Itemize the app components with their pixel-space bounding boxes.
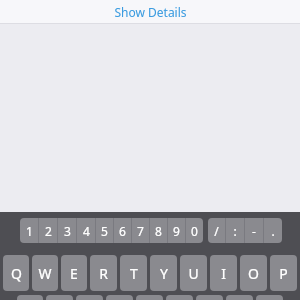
button[interactable] — [256, 295, 283, 300]
staticText: 8 — [155, 223, 162, 239]
button[interactable]: Y — [150, 255, 177, 291]
button[interactable]: 3 — [58, 218, 76, 243]
button[interactable]: 4 — [77, 218, 95, 243]
staticText: 7 — [137, 223, 144, 239]
staticText: Q — [11, 264, 22, 283]
staticText: 1 — [26, 223, 33, 239]
button[interactable] — [106, 295, 133, 300]
staticText: E — [70, 264, 78, 283]
button[interactable]: 2 — [39, 218, 57, 243]
staticText: P — [279, 264, 288, 283]
button[interactable]: Show Details — [104, 2, 197, 22]
button[interactable] — [17, 295, 43, 300]
staticText: 2 — [45, 223, 52, 239]
staticText: O — [248, 264, 259, 283]
staticText: - — [252, 223, 256, 239]
button[interactable]: E — [61, 255, 87, 291]
staticText: Y — [160, 264, 168, 283]
button[interactable]: R — [90, 255, 117, 291]
staticText: 4 — [83, 223, 90, 239]
button[interactable]: T — [120, 255, 147, 291]
staticText: T — [130, 264, 138, 283]
button[interactable]: 8 — [150, 218, 167, 243]
staticText: 9 — [173, 223, 180, 239]
staticText: / — [214, 223, 219, 239]
button[interactable]: 0 — [186, 218, 203, 243]
button[interactable] — [76, 295, 103, 300]
button[interactable]: O — [240, 255, 267, 291]
button[interactable]: 1 — [20, 218, 38, 243]
button[interactable]: . — [264, 218, 282, 243]
staticText: Show Details — [114, 4, 187, 20]
staticText: W — [38, 264, 52, 283]
button[interactable]: : — [226, 218, 244, 243]
button[interactable] — [136, 295, 163, 300]
staticText: 6 — [119, 223, 126, 239]
button[interactable]: - — [245, 218, 263, 243]
button[interactable]: U — [180, 255, 207, 291]
staticText: R — [99, 264, 108, 283]
staticText: I — [221, 264, 226, 283]
button[interactable] — [166, 295, 193, 300]
button[interactable]: 9 — [168, 218, 185, 243]
staticText: 5 — [101, 223, 108, 239]
button[interactable] — [226, 295, 253, 300]
button[interactable]: W — [32, 255, 58, 291]
staticText: . — [271, 223, 275, 239]
button[interactable]: / — [208, 218, 225, 243]
button[interactable]: 6 — [114, 218, 131, 243]
button[interactable]: 5 — [96, 218, 113, 243]
button[interactable]: I — [210, 255, 237, 291]
button[interactable] — [196, 295, 223, 300]
button[interactable]: 7 — [132, 218, 149, 243]
button[interactable] — [46, 295, 73, 300]
staticText: 0 — [191, 223, 198, 239]
staticText: : — [233, 223, 237, 239]
staticText: U — [188, 264, 199, 283]
button[interactable]: P — [270, 255, 297, 291]
button[interactable]: Q — [3, 255, 29, 291]
staticText: 3 — [64, 223, 71, 239]
